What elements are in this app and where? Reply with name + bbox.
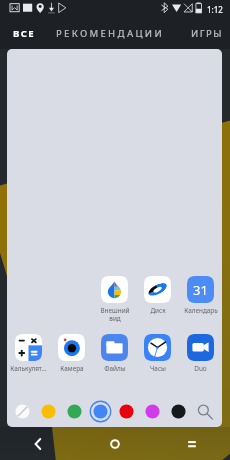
staticText: ИГРЫ — [191, 27, 223, 40]
staticText: ВСЕ — [13, 27, 35, 40]
staticText: 1:12 — [207, 4, 223, 15]
button[interactable]: Colour 5 — [143, 402, 162, 421]
staticText: Календарь — [184, 306, 218, 315]
button[interactable]: Файлы — [93, 334, 136, 373]
button[interactable]: Recents — [153, 427, 230, 460]
staticText: 31 — [193, 281, 208, 299]
button[interactable]: Диск — [136, 276, 179, 315]
button[interactable]: Colour 2 — [65, 402, 84, 421]
button[interactable]: Back — [0, 427, 76, 460]
button[interactable]: Часы — [136, 334, 179, 373]
button[interactable]: ИГРЫ — [191, 27, 230, 40]
staticText: РЕКОМЕНДАЦИИ — [56, 27, 165, 40]
button[interactable]: Colour 6 — [169, 402, 188, 421]
staticText: Внешний вид — [100, 306, 130, 323]
button[interactable]: Colour 3 — [91, 402, 110, 421]
button[interactable]: Камера — [50, 334, 93, 373]
button[interactable]: 31 — [179, 276, 222, 315]
button[interactable]: Colour 4 — [117, 402, 136, 421]
staticText: Диск — [150, 306, 166, 315]
staticText: Часы — [150, 364, 166, 373]
staticText: Калькулят… — [10, 364, 47, 373]
staticText: Duo — [194, 364, 207, 373]
button[interactable]: Colour 1 — [39, 402, 58, 421]
button[interactable]: Search — [195, 402, 214, 421]
button[interactable]: Home — [76, 427, 153, 460]
staticText: Камера — [60, 364, 84, 373]
button[interactable]: Colour 0 — [13, 402, 32, 421]
staticText: Файлы — [104, 364, 126, 373]
button[interactable]: ВСЕ — [0, 27, 45, 40]
button[interactable]: Внешний вид — [93, 276, 136, 323]
button[interactable]: РЕКОМЕНДАЦИИ — [54, 27, 167, 40]
button[interactable]: Калькулят… — [7, 334, 50, 373]
button[interactable]: Duo — [179, 334, 222, 373]
